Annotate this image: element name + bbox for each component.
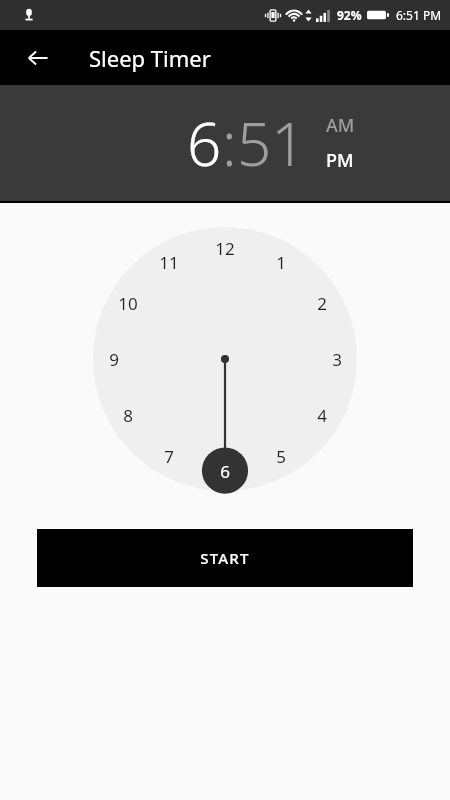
staticText: START bbox=[200, 548, 250, 568]
staticText: 10 bbox=[118, 292, 138, 315]
button[interactable]: Back bbox=[14, 34, 62, 82]
button[interactable]: PM bbox=[326, 148, 354, 173]
staticText: 9 bbox=[109, 348, 119, 371]
staticText: 5 bbox=[276, 445, 286, 468]
staticText: 7 bbox=[164, 445, 174, 468]
staticText: : bbox=[222, 102, 237, 184]
staticText: 6 bbox=[220, 460, 230, 483]
button[interactable]: 1 bbox=[93, 227, 357, 491]
staticText: 3 bbox=[332, 348, 342, 371]
staticText: 92% bbox=[337, 7, 362, 23]
button[interactable]: 6 bbox=[187, 102, 222, 184]
staticText: 12 bbox=[215, 237, 235, 260]
staticText: 1 bbox=[276, 251, 286, 274]
button[interactable]: AM bbox=[326, 113, 355, 138]
button[interactable]: 51 bbox=[237, 102, 306, 184]
staticText: 4 bbox=[317, 404, 327, 427]
staticText: Sleep Timer bbox=[89, 43, 211, 73]
staticText: 6:51 PM bbox=[396, 7, 442, 23]
button[interactable]: START bbox=[37, 529, 413, 587]
staticText: 8 bbox=[123, 404, 133, 427]
staticText: 11 bbox=[159, 251, 179, 274]
staticText: 2 bbox=[317, 292, 327, 315]
